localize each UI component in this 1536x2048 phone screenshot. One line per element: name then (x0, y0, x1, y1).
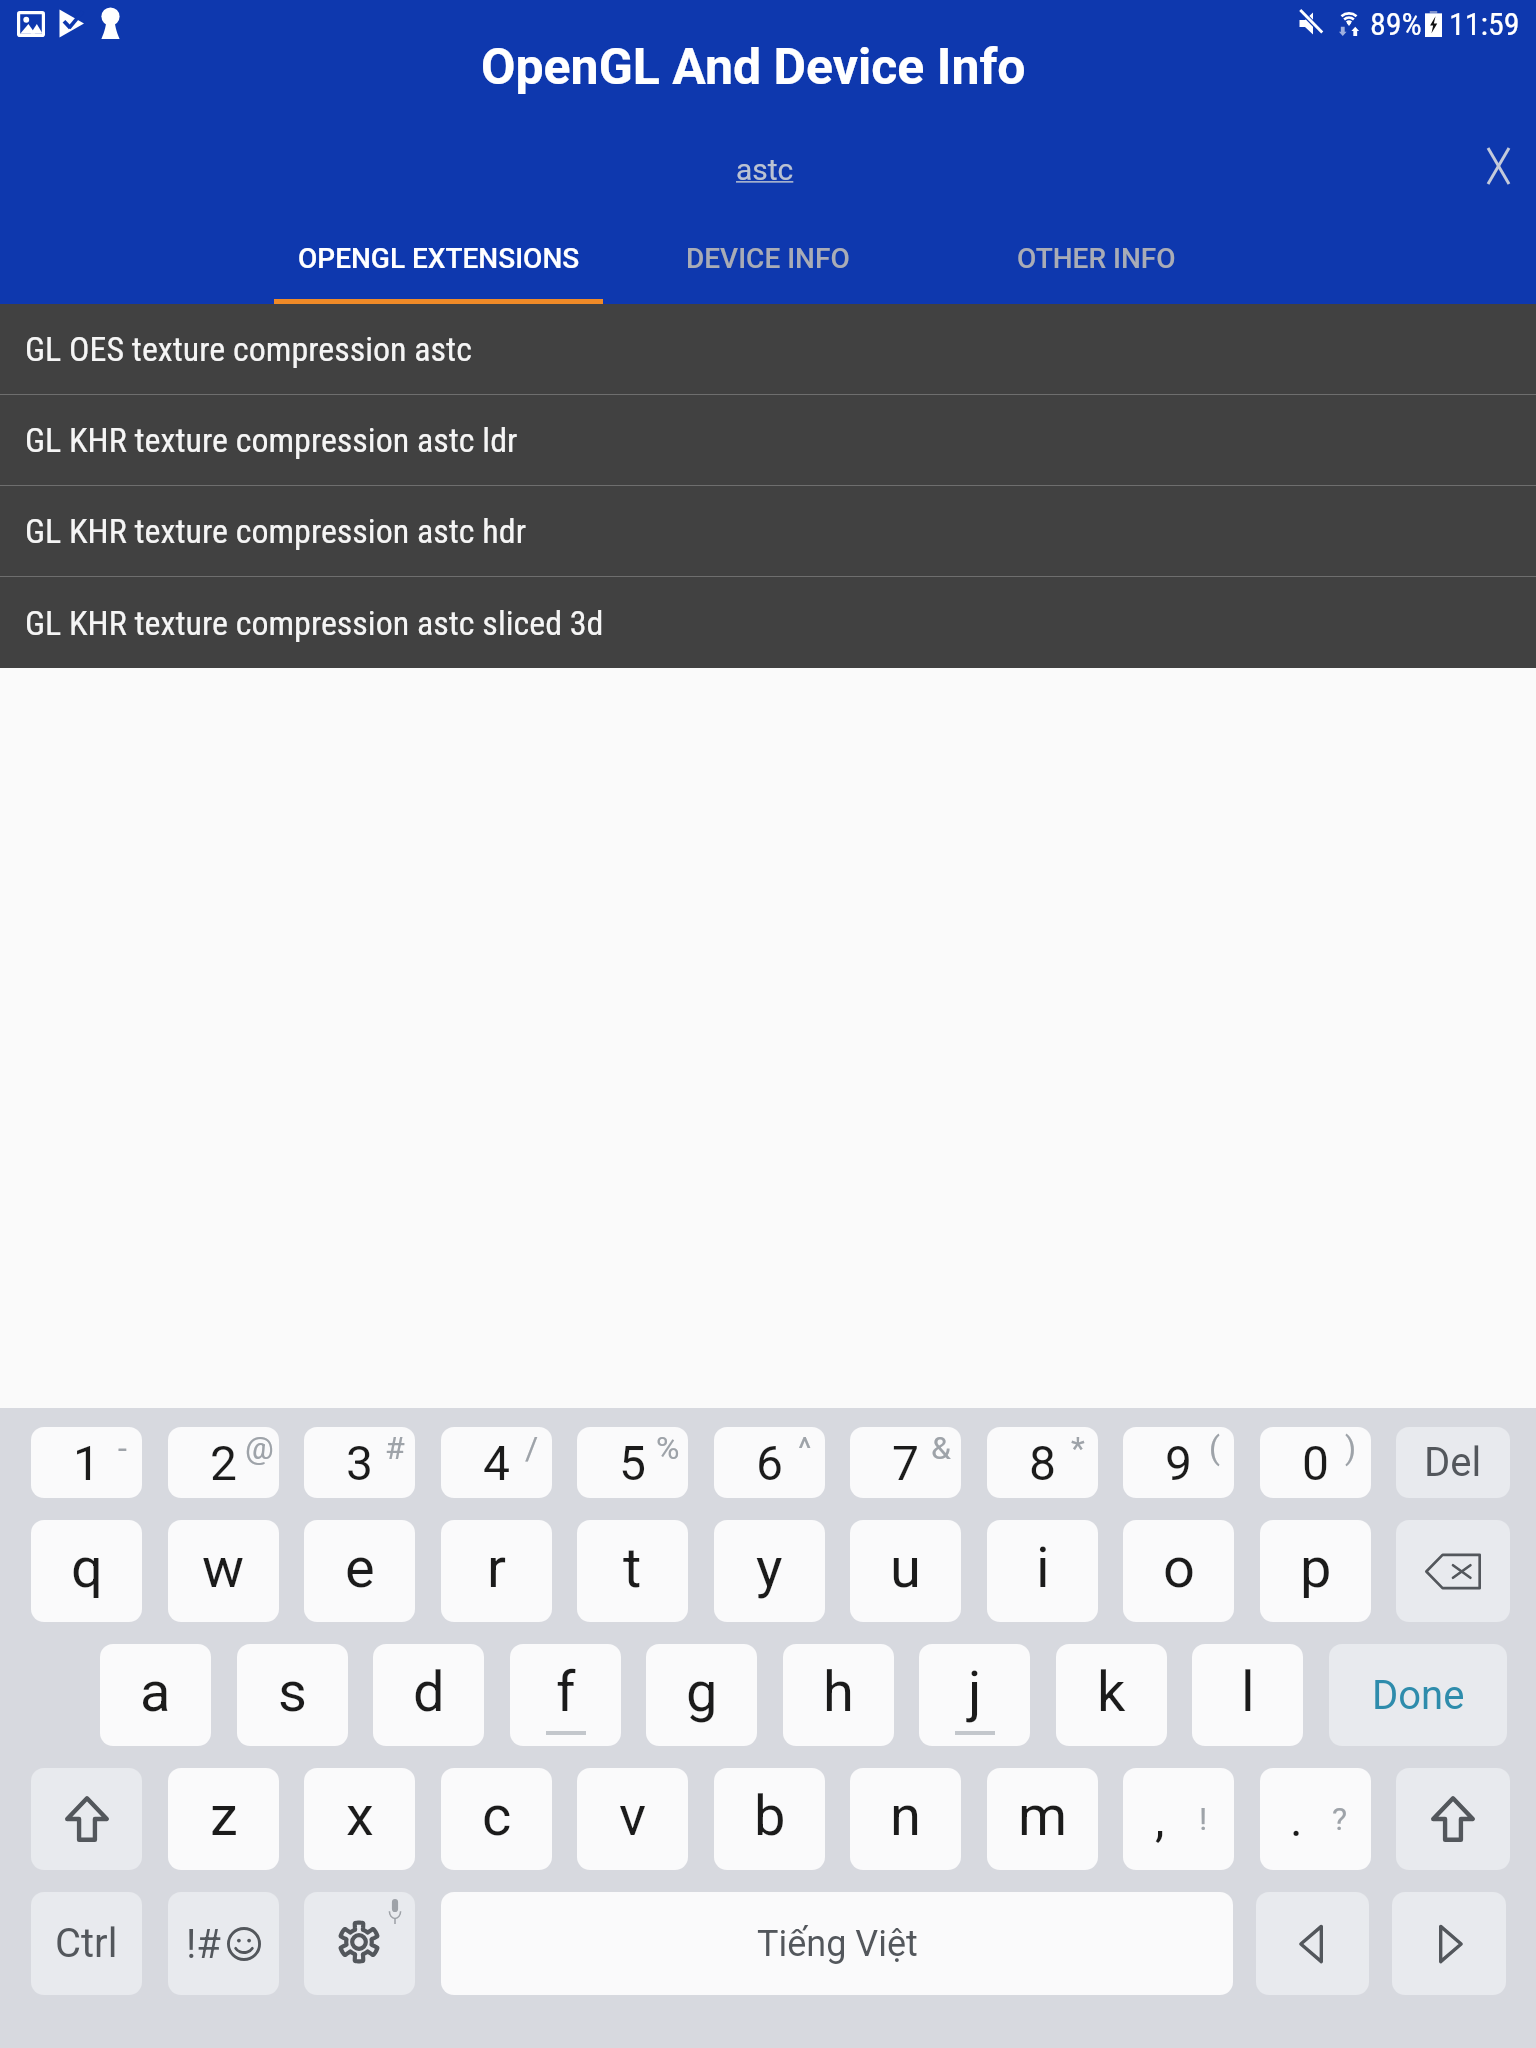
button[interactable]: w (168, 1520, 279, 1622)
button[interactable]: f (510, 1644, 621, 1746)
staticText: 3 (346, 1435, 373, 1491)
staticText: l (1241, 1659, 1255, 1725)
staticText: & (931, 1429, 951, 1467)
staticText: Tiếng Việt (757, 1923, 918, 1965)
button[interactable]: 2 (168, 1427, 279, 1498)
button[interactable]: y (714, 1520, 825, 1622)
button[interactable]: GL KHR texture compression astc ldr (0, 395, 1536, 485)
staticText: d (413, 1659, 445, 1725)
staticText: e (345, 1535, 375, 1601)
button[interactable]: Previous (1256, 1892, 1369, 1995)
button[interactable]: 8 (987, 1427, 1098, 1498)
button[interactable]: 7 (850, 1427, 961, 1498)
staticText: ( (1209, 1429, 1220, 1467)
staticText: / (525, 1429, 539, 1467)
staticText: 1 (73, 1435, 100, 1491)
button[interactable]: k (1056, 1644, 1167, 1746)
button[interactable]: 5 (577, 1427, 688, 1498)
staticText: GL KHR texture compression astc hdr (25, 511, 527, 551)
button[interactable]: Settings (304, 1892, 415, 1995)
staticText: v (619, 1783, 647, 1849)
button[interactable]: , (1123, 1768, 1234, 1870)
staticText: OpenGL And Device Info (481, 38, 1026, 97)
staticText: 7 (892, 1435, 919, 1491)
button[interactable]: s (237, 1644, 348, 1746)
button[interactable]: p (1260, 1520, 1371, 1622)
button[interactable]: Del (1396, 1427, 1510, 1498)
button[interactable]: h (783, 1644, 894, 1746)
staticText: !# (186, 1921, 221, 1968)
staticText: % (656, 1429, 680, 1467)
staticText: astc (736, 152, 794, 187)
staticText: Del (1424, 1439, 1482, 1486)
staticText: w (202, 1535, 245, 1601)
staticText: ! (1199, 1800, 1208, 1838)
button[interactable]: e (304, 1520, 415, 1622)
button[interactable]: g (646, 1644, 757, 1746)
button[interactable]: 3 (304, 1427, 415, 1498)
button[interactable]: 4 (441, 1427, 552, 1498)
staticText: GL KHR texture compression astc sliced 3… (25, 603, 604, 643)
button[interactable]: GL OES texture compression astc (0, 304, 1536, 394)
staticText: z (210, 1783, 238, 1849)
button[interactable]: v (577, 1768, 688, 1870)
staticText: Done (1372, 1672, 1465, 1719)
button[interactable]: t (577, 1520, 688, 1622)
staticText: # (385, 1429, 405, 1467)
button[interactable]: 1 (31, 1427, 142, 1498)
staticText: i (1036, 1535, 1050, 1601)
staticText: q (71, 1535, 103, 1601)
staticText: m (1018, 1783, 1068, 1849)
staticText: c (482, 1783, 512, 1849)
staticText: u (890, 1535, 921, 1601)
button[interactable]: Ctrl (31, 1892, 142, 1995)
staticText: GL OES texture compression astc (25, 329, 472, 369)
button[interactable]: OPENGL EXTENSIONS (274, 222, 603, 304)
button[interactable]: 9 (1123, 1427, 1234, 1498)
button[interactable]: Next (1392, 1892, 1506, 1995)
button[interactable]: u (850, 1520, 961, 1622)
staticText: , (1155, 1791, 1165, 1847)
button[interactable]: DEVICE INFO (603, 222, 932, 304)
staticText: 0 (1302, 1435, 1329, 1491)
button[interactable]: o (1123, 1520, 1234, 1622)
button[interactable]: b (714, 1768, 825, 1870)
button[interactable]: GL KHR texture compression astc hdr (0, 486, 1536, 576)
button[interactable]: Backspace (1396, 1520, 1510, 1622)
button[interactable]: GL KHR texture compression astc sliced 3… (0, 577, 1536, 668)
button[interactable]: Clear search (1468, 136, 1528, 196)
button[interactable]: Done (1329, 1644, 1507, 1746)
button[interactable]: i (987, 1520, 1098, 1622)
button[interactable]: 0 (1260, 1427, 1371, 1498)
button[interactable]: a (100, 1644, 211, 1746)
staticText: - (118, 1429, 127, 1467)
staticText: ? (1332, 1800, 1348, 1838)
button[interactable]: j (919, 1644, 1030, 1746)
staticText: 89% (1370, 5, 1422, 43)
button[interactable]: Shift (31, 1768, 142, 1870)
button[interactable]: m (987, 1768, 1098, 1870)
button[interactable]: . (1260, 1768, 1371, 1870)
staticText: 11:59 (1449, 5, 1520, 43)
button[interactable]: OTHER INFO (932, 222, 1261, 304)
button[interactable]: Shift (1396, 1768, 1510, 1870)
button[interactable]: q (31, 1520, 142, 1622)
staticText: o (1163, 1535, 1195, 1601)
staticText: j (968, 1659, 982, 1725)
staticText: g (686, 1659, 718, 1725)
staticText: k (1097, 1659, 1126, 1725)
button[interactable]: Symbols and emoji (168, 1892, 279, 1995)
staticText: ) (1345, 1429, 1357, 1467)
button[interactable]: n (850, 1768, 961, 1870)
button[interactable]: c (441, 1768, 552, 1870)
staticText: p (1300, 1535, 1332, 1601)
staticText: DEVICE INFO (686, 242, 850, 275)
staticText: * (1071, 1429, 1085, 1467)
button[interactable]: z (168, 1768, 279, 1870)
button[interactable]: l (1192, 1644, 1303, 1746)
button[interactable]: r (441, 1520, 552, 1622)
button[interactable]: d (373, 1644, 484, 1746)
button[interactable]: x (304, 1768, 415, 1870)
button[interactable]: 6 (714, 1427, 825, 1498)
button[interactable]: Tiếng Việt (441, 1892, 1233, 1995)
